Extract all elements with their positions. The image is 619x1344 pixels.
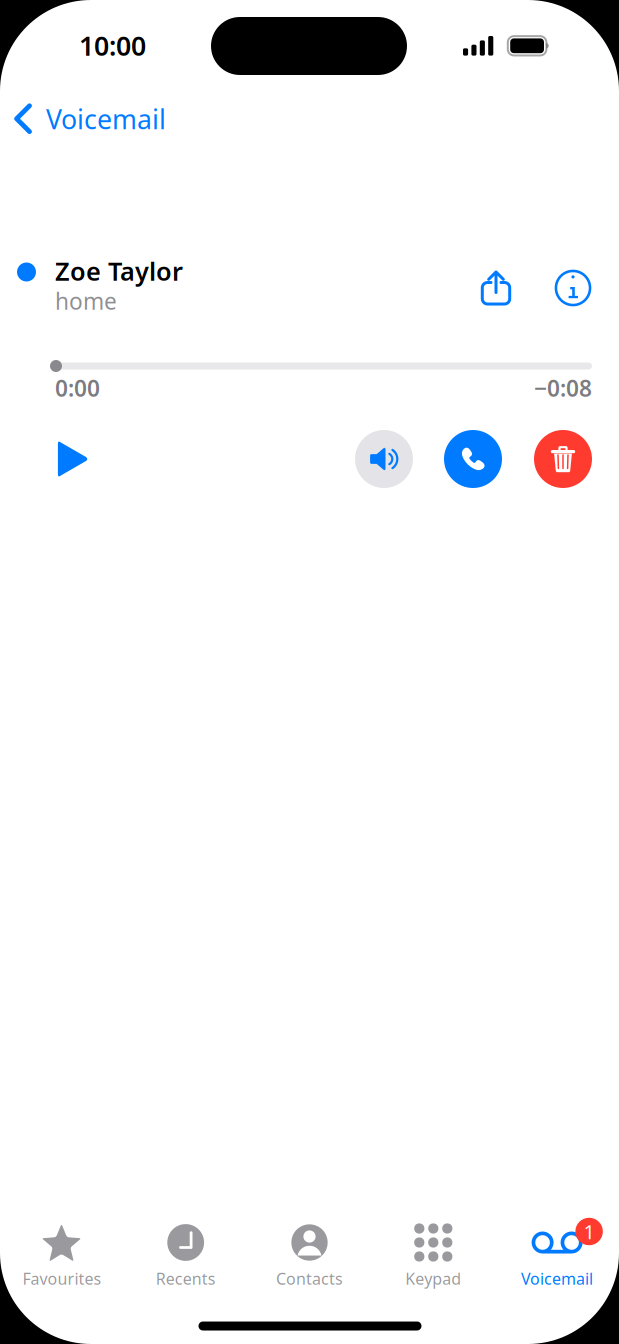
staticText: home <box>55 286 117 316</box>
button[interactable]: Share <box>479 270 512 306</box>
button[interactable]: Recents <box>124 1221 248 1291</box>
staticText: Voicemail <box>521 1268 593 1289</box>
staticText: 10:00 <box>79 28 146 63</box>
button[interactable]: Details <box>555 270 591 306</box>
button[interactable]: Speaker <box>355 430 413 488</box>
button[interactable]: Call back <box>444 430 502 488</box>
staticText: Recents <box>156 1268 216 1289</box>
staticText: Favourites <box>22 1268 101 1289</box>
staticText: Contacts <box>276 1268 343 1289</box>
staticText: 0:00 <box>55 373 100 403</box>
staticText: Voicemail <box>46 101 166 137</box>
button[interactable]: Contacts <box>248 1221 371 1291</box>
button[interactable]: Favourites <box>0 1221 124 1291</box>
button[interactable]: 1 <box>495 1221 619 1291</box>
staticText: Keypad <box>405 1268 461 1289</box>
button[interactable]: Voicemail <box>14 92 244 146</box>
button[interactable]: Delete <box>534 430 592 488</box>
staticText: 1 <box>584 1218 595 1245</box>
staticText: −0:08 <box>534 373 592 403</box>
button[interactable]: Keypad <box>371 1221 495 1291</box>
button[interactable]: Play <box>42 428 104 490</box>
staticText: Zoe Taylor <box>55 254 183 288</box>
